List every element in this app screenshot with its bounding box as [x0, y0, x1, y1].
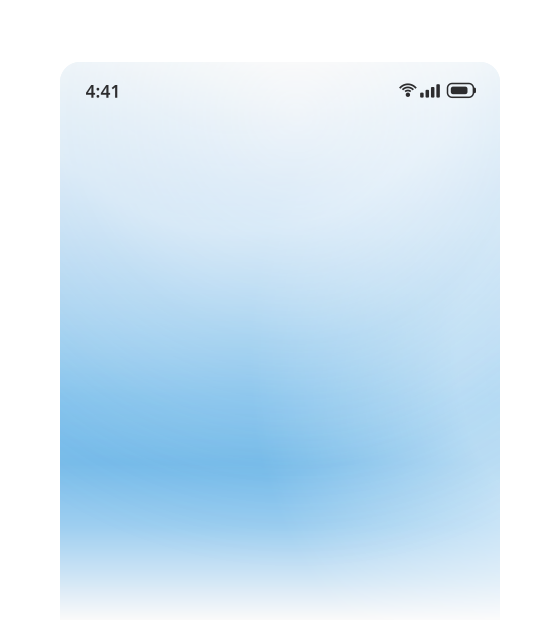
staticText: 4:41: [86, 80, 121, 103]
